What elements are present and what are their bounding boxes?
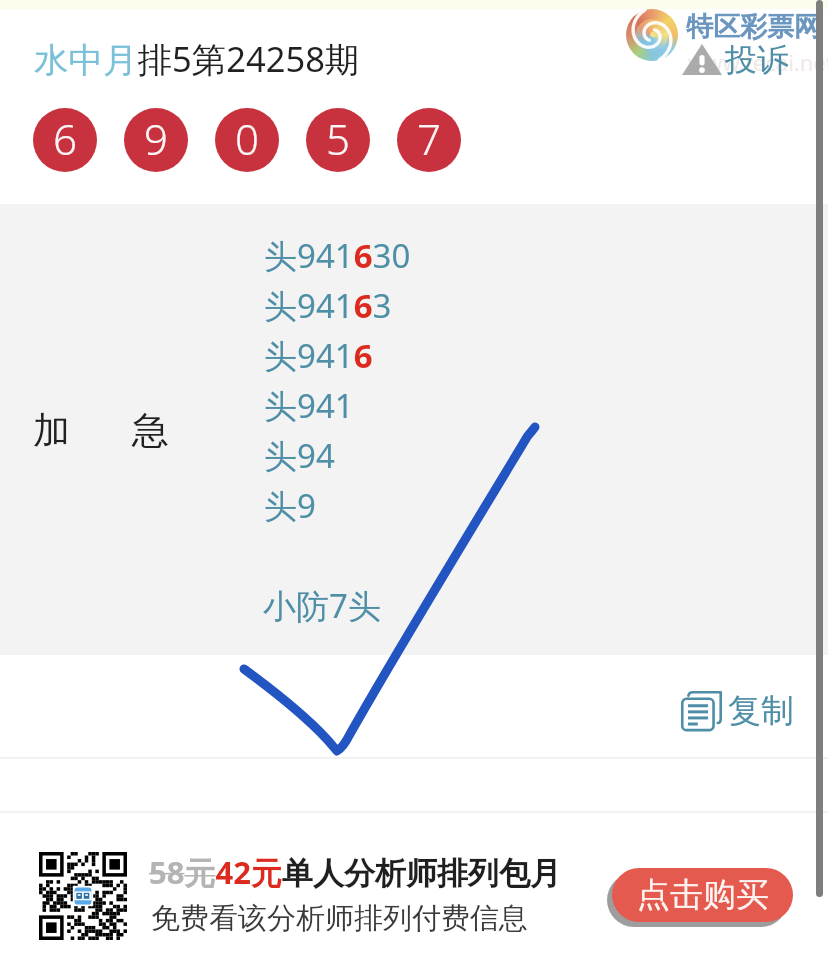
staticText: 7 [417,110,441,167]
staticText: 头94 [264,433,335,478]
staticText: 水中月排5第24258期 [34,35,360,82]
staticText: 头941 [264,383,354,428]
staticText: 特区彩票网 [686,10,821,44]
staticText: 免费看该分析师排列付费信息 [151,900,528,937]
button[interactable]: 9 [124,108,188,172]
staticText: 6 [53,110,77,167]
staticText: 加 [33,407,70,454]
staticText: 头9416 [264,333,373,378]
button[interactable]: 6 [33,108,97,172]
staticText: 复制 [728,690,794,732]
staticText: 头9 [264,483,316,528]
staticText: www.tecai.net [688,47,828,77]
button[interactable]: 点击购买 [612,868,793,922]
staticText: 急 [132,407,169,454]
staticText: 头94163 [264,283,392,328]
staticText: 小防7头 [263,583,381,628]
staticText: 58元42元单人分析师排列包月 [149,851,561,893]
staticText: 投诉 [725,40,789,80]
button[interactable]: 5 [306,108,370,172]
staticText: 点击购买 [637,874,769,916]
staticText: 9 [144,110,168,167]
staticText: 5 [326,110,350,167]
button[interactable]: 0 [215,108,279,172]
staticText: 0 [235,110,259,167]
button[interactable]: 7 [397,108,461,172]
staticText: 头941630 [264,233,411,278]
button[interactable]: 复制 [681,690,794,732]
button[interactable]: 投诉 [681,39,789,79]
